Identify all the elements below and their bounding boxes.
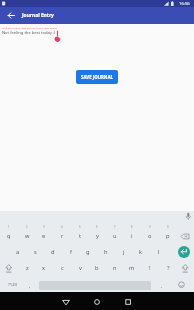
staticText: s bbox=[34, 248, 37, 256]
staticText: z bbox=[26, 264, 29, 272]
staticText: Journal Entry bbox=[22, 12, 54, 19]
staticText: d bbox=[51, 248, 55, 256]
staticText: 1 bbox=[8, 225, 10, 229]
button[interactable] bbox=[121, 294, 135, 308]
staticText: 9 bbox=[149, 225, 151, 229]
staticText: u bbox=[113, 232, 117, 240]
staticText: a bbox=[16, 248, 20, 256]
staticText: , bbox=[29, 282, 31, 289]
staticText: ! bbox=[149, 264, 151, 272]
staticText: c bbox=[61, 264, 64, 272]
staticText: p bbox=[166, 232, 170, 240]
staticText: j bbox=[123, 248, 125, 256]
staticText: r bbox=[61, 232, 64, 240]
staticText: 7 bbox=[114, 225, 116, 229]
staticText: h bbox=[104, 248, 108, 256]
staticText: Not feeling the best today :( bbox=[2, 30, 56, 36]
staticText: 3 bbox=[43, 225, 45, 229]
staticText: b bbox=[95, 264, 99, 272]
staticText: . bbox=[161, 282, 163, 289]
button[interactable]: SAVE JOURNAL bbox=[76, 70, 118, 84]
staticText: t bbox=[79, 232, 82, 240]
staticText: o bbox=[148, 232, 152, 240]
staticText: q bbox=[7, 232, 11, 240]
staticText: Max 250 Chars! Upgrade to Pro for 1000 C… bbox=[2, 26, 58, 29]
button[interactable] bbox=[90, 294, 104, 308]
staticText: ?123 bbox=[8, 282, 18, 288]
staticText: v bbox=[79, 264, 82, 272]
staticText: w bbox=[25, 232, 30, 240]
staticText: l bbox=[158, 248, 160, 256]
staticText: f bbox=[70, 248, 72, 256]
staticText: ? bbox=[167, 264, 170, 272]
staticText: g bbox=[86, 248, 90, 256]
staticText: 6 bbox=[96, 225, 98, 229]
staticText: 8 bbox=[131, 225, 133, 229]
button[interactable] bbox=[58, 294, 73, 308]
staticText: SAVE JOURNAL bbox=[81, 74, 113, 80]
staticText: i bbox=[131, 232, 133, 240]
button[interactable] bbox=[178, 246, 190, 258]
staticText: e bbox=[42, 232, 46, 240]
staticText: n bbox=[113, 264, 117, 272]
staticText: 0 bbox=[167, 225, 169, 229]
staticText: 4 bbox=[61, 225, 63, 229]
button[interactable] bbox=[4, 9, 18, 22]
staticText: k bbox=[139, 248, 143, 256]
staticText: 2 bbox=[26, 225, 28, 229]
staticText: m bbox=[129, 264, 135, 272]
staticText: x bbox=[42, 264, 46, 272]
staticText: 16:56 bbox=[179, 1, 190, 7]
staticText: y bbox=[96, 232, 99, 240]
staticText: 5 bbox=[79, 225, 81, 229]
